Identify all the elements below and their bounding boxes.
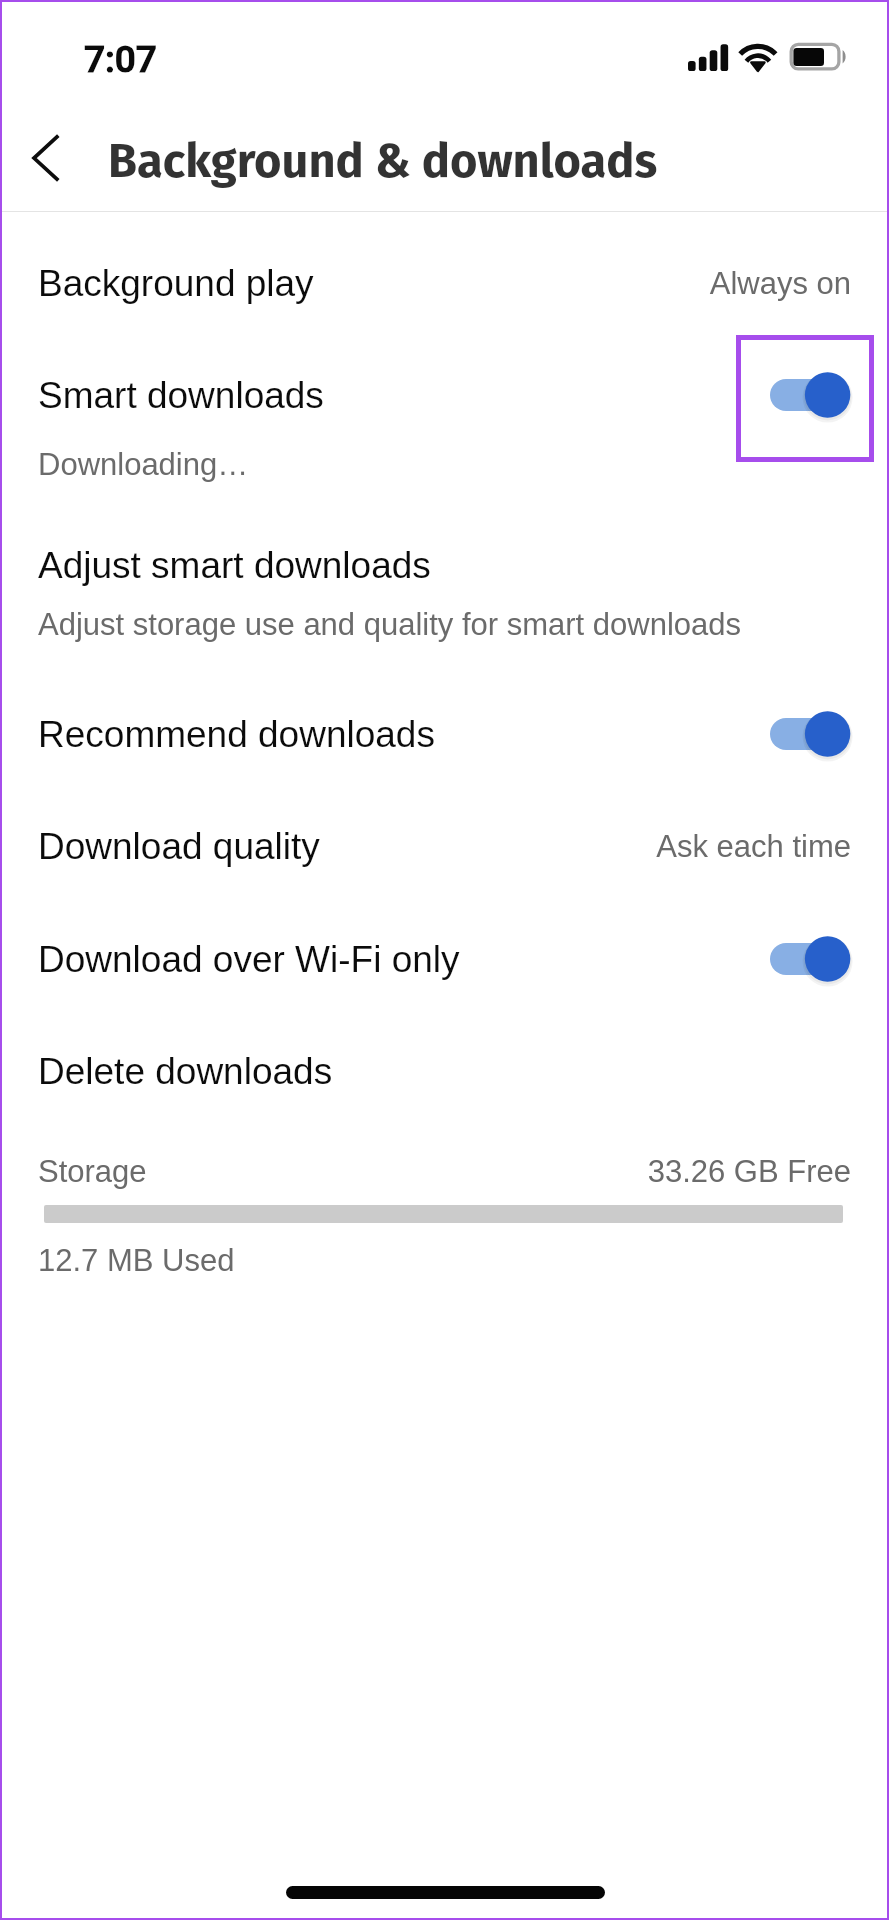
button[interactable]: Toggle setting — [760, 364, 866, 426]
staticText: Smart downloads — [38, 375, 324, 416]
button[interactable]: Toggle setting — [760, 703, 866, 765]
staticText: Storage — [38, 1154, 147, 1189]
button[interactable]: Toggle setting — [760, 928, 866, 990]
staticText: Adjust storage use and quality for smart… — [38, 607, 742, 642]
staticText: Download quality — [38, 826, 320, 867]
button[interactable]: Back — [6, 119, 84, 197]
button[interactable]: Download quality — [0, 790, 889, 898]
button[interactable]: Smart downloads — [0, 340, 889, 490]
staticText: Adjust smart downloads — [38, 545, 431, 586]
staticText: Downloading… — [38, 447, 249, 482]
button[interactable]: Adjust smart downloads — [0, 508, 889, 660]
staticText: Always on — [709, 266, 851, 301]
button[interactable]: Delete downloads — [0, 1015, 889, 1123]
staticText: Background play — [38, 263, 314, 304]
staticText: Ask each time — [656, 829, 851, 864]
staticText: 33.26 GB Free — [647, 1154, 851, 1189]
staticText: Delete downloads — [38, 1051, 333, 1092]
button[interactable]: Background play — [0, 226, 889, 334]
staticText: Background & downloads — [108, 133, 658, 189]
staticText: Download over Wi-Fi only — [38, 939, 460, 980]
staticText: 7:07 — [84, 38, 157, 81]
staticText: 12.7 MB Used — [38, 1243, 235, 1278]
staticText: Recommend downloads — [38, 714, 435, 755]
button[interactable]: Download over Wi-Fi only — [0, 903, 889, 1013]
button[interactable]: Recommend downloads — [0, 678, 889, 788]
